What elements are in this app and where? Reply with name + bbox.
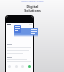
button[interactable]: Featured card xyxy=(14,25,21,33)
button[interactable]: Notification card xyxy=(30,28,38,35)
button[interactable]: Action 1 xyxy=(8,65,11,68)
button[interactable]: Action 4 xyxy=(28,65,31,68)
staticText: Digital Solutions xyxy=(24,4,41,13)
staticText: DIGITAL DESIGN STUDIO xyxy=(21,0,44,3)
button[interactable]: Action 2 xyxy=(15,65,18,68)
button[interactable]: Action 3 xyxy=(21,65,24,68)
